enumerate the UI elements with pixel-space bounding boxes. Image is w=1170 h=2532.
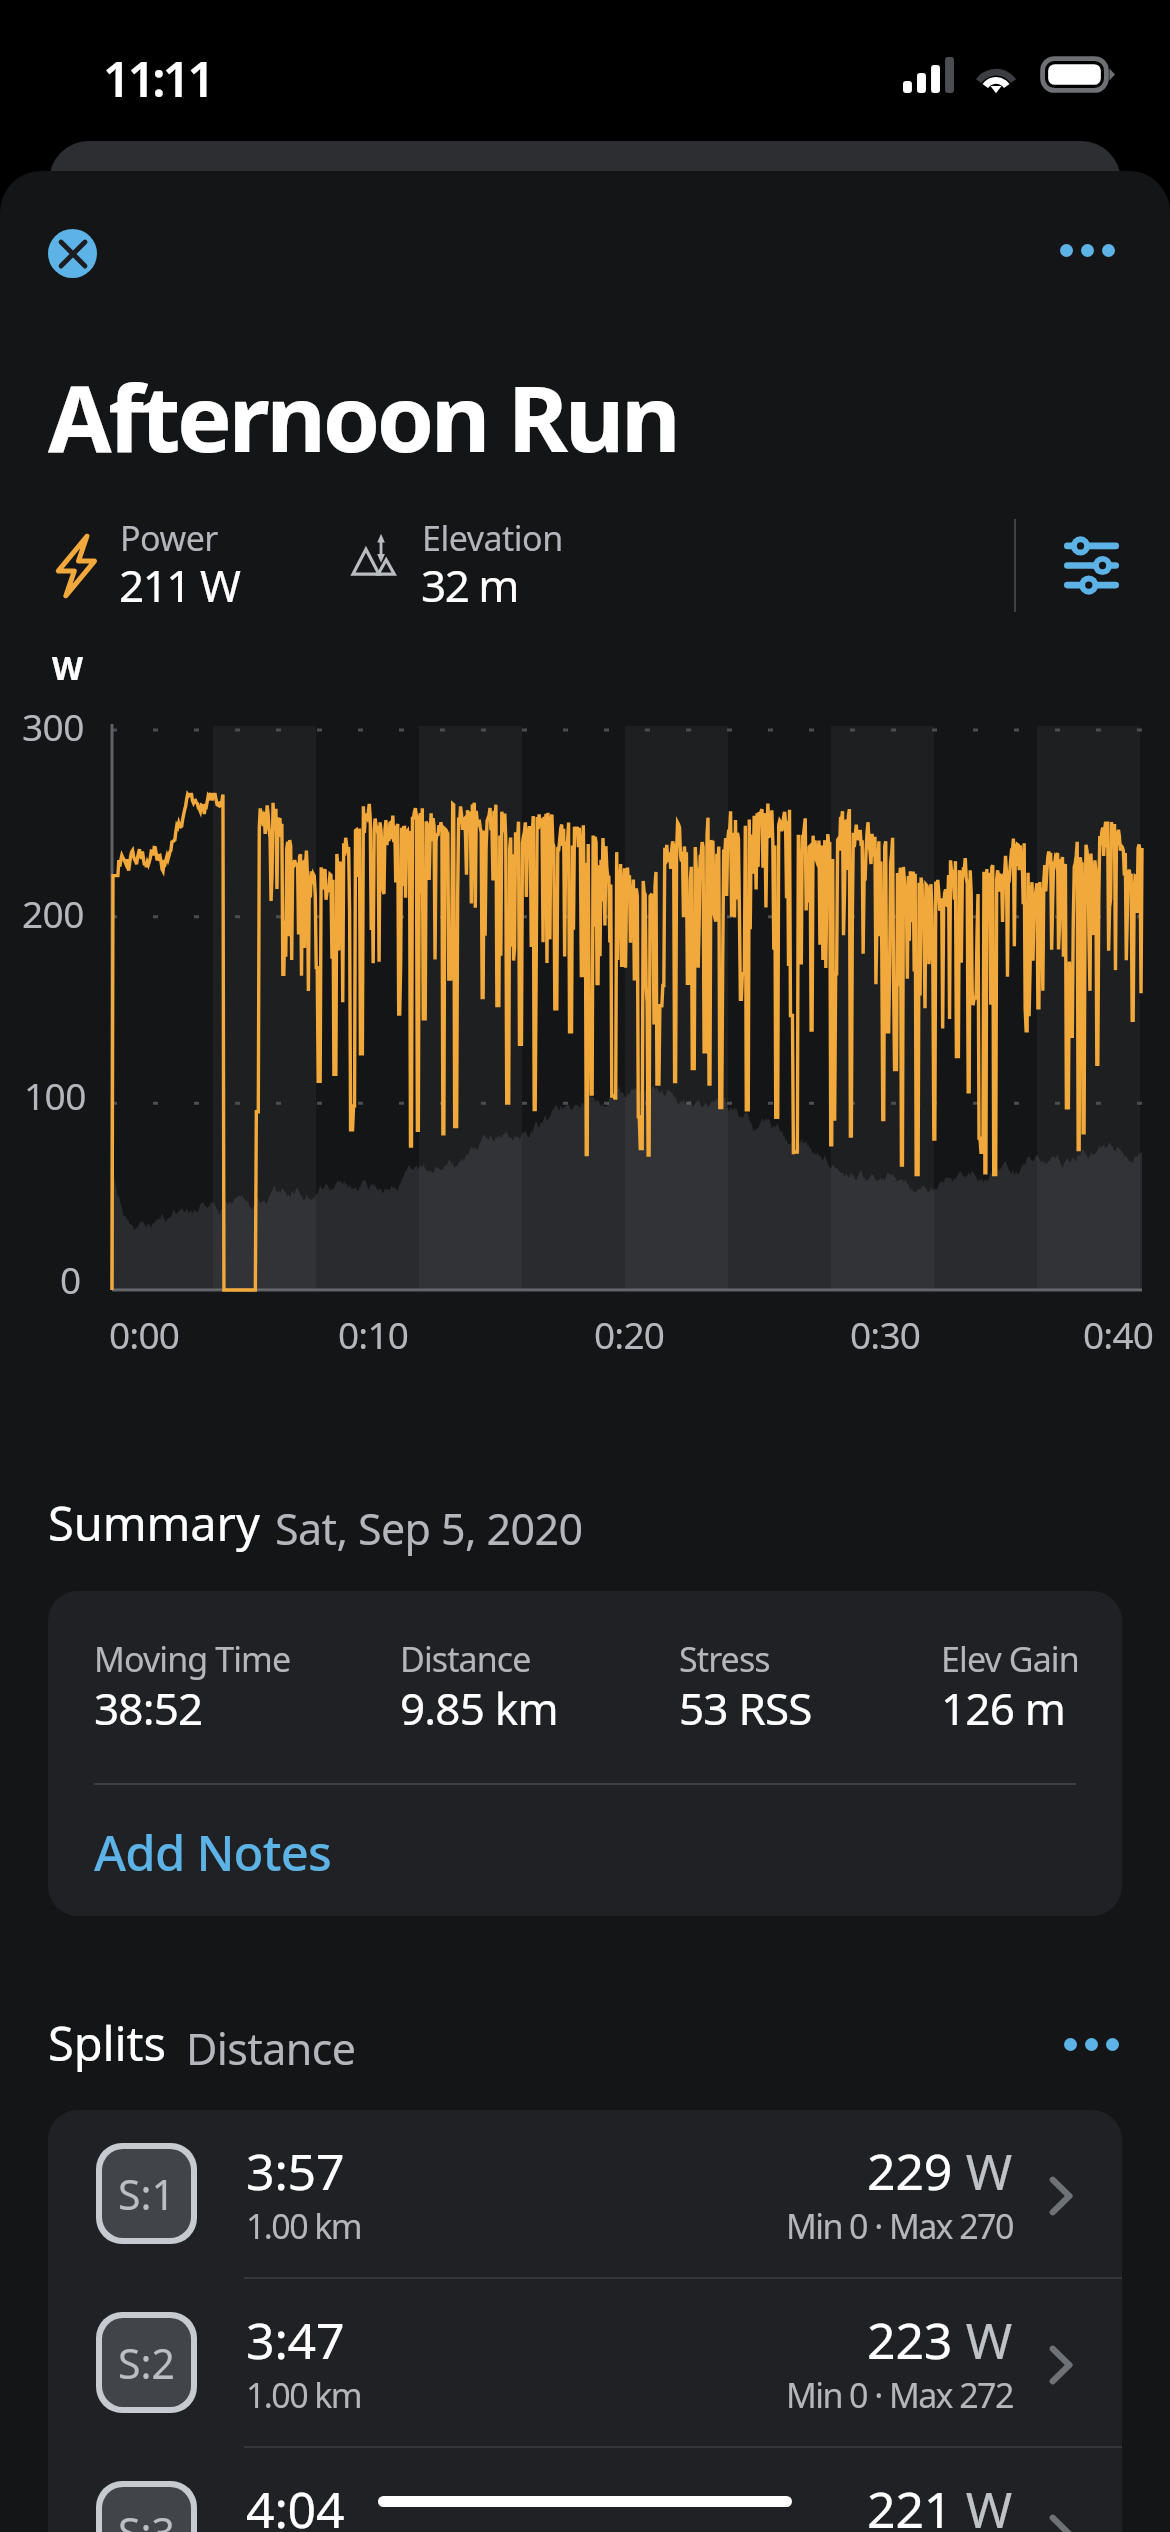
staticText: Distance (186, 2019, 356, 2078)
staticText: 4:04 (246, 2475, 345, 2532)
staticText: 100 (24, 1070, 86, 1120)
staticText: Splits (48, 2011, 166, 2075)
staticText: Elevation (422, 515, 563, 561)
staticText: Afternoon Run (48, 354, 678, 479)
button[interactable]: Add Notes (48, 1783, 1122, 1916)
button[interactable]: S:2 (48, 2279, 1122, 2448)
staticText: 1.00 km (246, 2372, 362, 2418)
button[interactable]: Chart settings (1048, 523, 1135, 608)
staticText: W (953, 2306, 1013, 2374)
staticText: 0:40 (1083, 1309, 1154, 1359)
button[interactable]: S:1 (48, 2110, 1122, 2279)
staticText: 11:11 (103, 46, 213, 111)
staticText: Elev Gain (941, 1636, 1079, 1682)
staticText: S:1 (118, 2166, 175, 2222)
staticText: W (953, 2475, 1013, 2532)
staticText: 9.85 km (400, 1678, 558, 1738)
staticText: 126 m (941, 1678, 1066, 1738)
staticText: 3:57 (246, 2137, 345, 2205)
staticText: 32 m (421, 555, 518, 615)
staticText: 211 W (119, 555, 240, 615)
button[interactable]: Splits options (1052, 2024, 1131, 2065)
staticText: S:2 (118, 2335, 175, 2391)
staticText: 229 (867, 2137, 953, 2205)
staticText: Sat, Sep 5, 2020 (275, 1499, 583, 1558)
staticText: 300 (22, 701, 84, 751)
staticText: S:3 (118, 2504, 175, 2532)
staticText: 1.00 km (246, 2203, 362, 2249)
staticText: 0:10 (338, 1309, 409, 1359)
staticText: 0 (60, 1254, 81, 1304)
staticText: Min 0 · Max 272 (786, 2372, 1013, 2418)
staticText: 38:52 (94, 1678, 203, 1738)
staticText: Min 0 · Max 270 (786, 2203, 1013, 2249)
staticText: Moving Time (94, 1636, 291, 1682)
staticText: 200 (22, 888, 84, 938)
staticText: 0:20 (594, 1309, 665, 1359)
staticText: 53 RSS (679, 1678, 812, 1738)
staticText: 221 (867, 2475, 953, 2532)
staticText: 0:00 (109, 1309, 180, 1359)
staticText: Summary (48, 1491, 260, 1555)
staticText: Distance (400, 1636, 531, 1682)
staticText: Add Notes (94, 1819, 332, 1886)
staticText: Stress (679, 1636, 770, 1682)
button[interactable]: Close (48, 229, 97, 278)
staticText: Power (120, 515, 218, 561)
staticText: 3:47 (246, 2306, 345, 2374)
button[interactable]: S:3 (48, 2448, 1122, 2532)
staticText: W (52, 646, 83, 690)
button[interactable]: More options (1048, 230, 1127, 271)
staticText: 0:30 (850, 1309, 921, 1359)
staticText: W (953, 2137, 1013, 2205)
staticText: 223 (867, 2306, 953, 2374)
